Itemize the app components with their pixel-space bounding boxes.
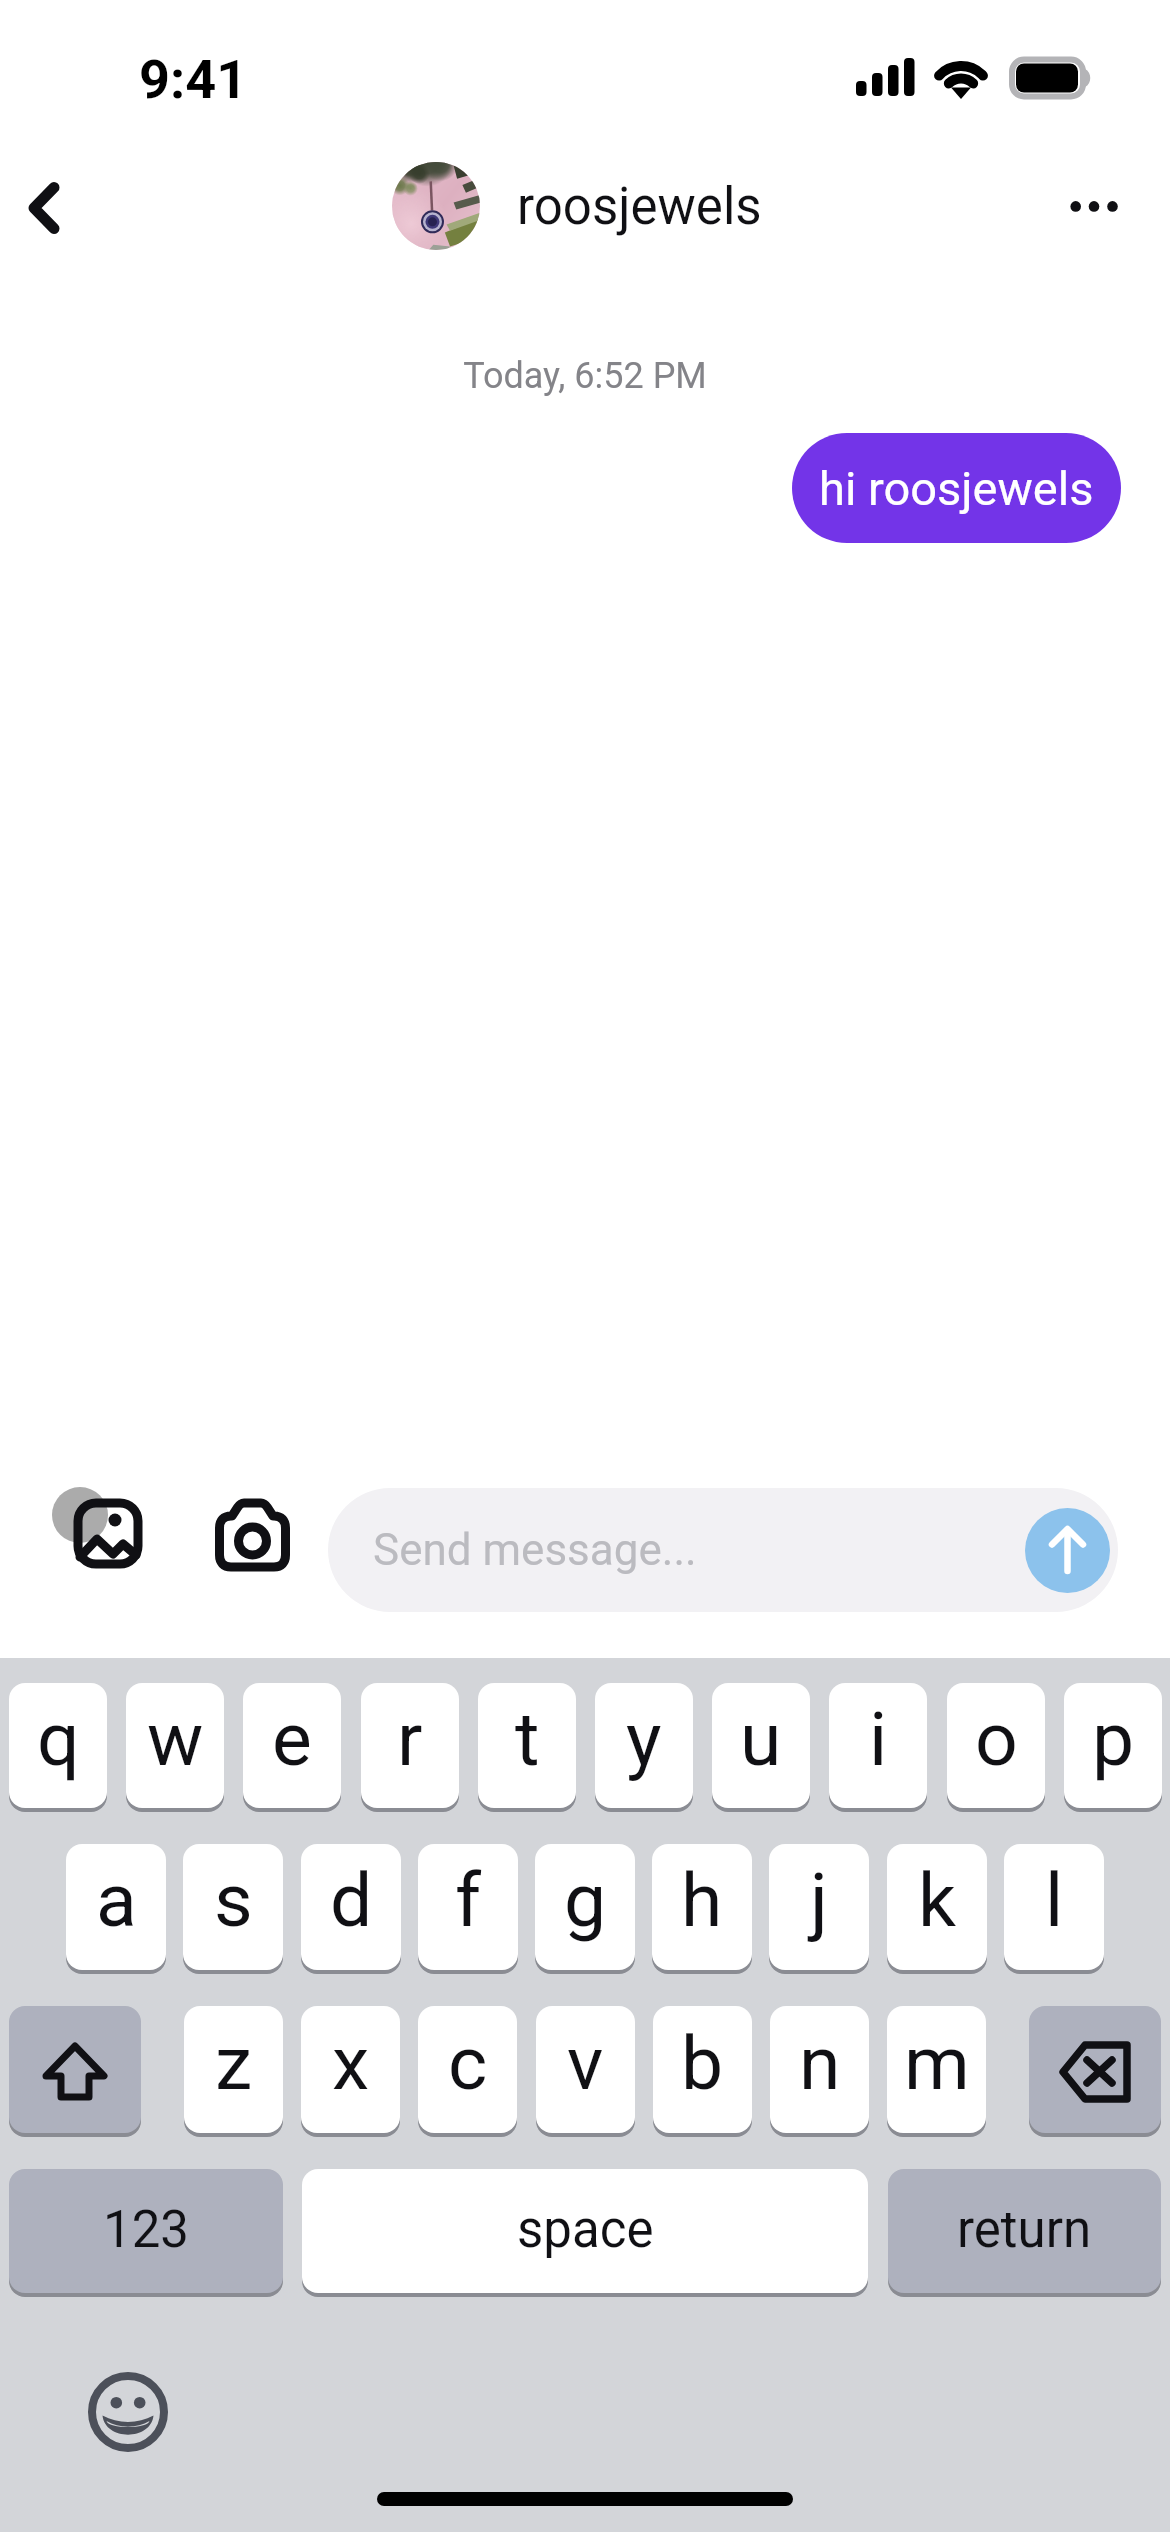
- staticText: d: [330, 1856, 373, 1944]
- staticText: e: [272, 1695, 312, 1783]
- button[interactable]: k: [887, 1844, 987, 1970]
- button[interactable]: m: [887, 2006, 986, 2133]
- button[interactable]: s: [183, 1844, 283, 1970]
- button[interactable]: [392, 162, 480, 250]
- button[interactable]: Emoji keyboard: [88, 2372, 168, 2452]
- staticText: h: [681, 1856, 723, 1944]
- staticText: w: [147, 1695, 204, 1783]
- button[interactable]: Back: [0, 146, 100, 266]
- button[interactable]: Shift: [9, 2006, 141, 2133]
- button[interactable]: More options: [1034, 146, 1160, 267]
- button[interactable]: g: [535, 1844, 635, 1970]
- staticText: o: [975, 1695, 1018, 1783]
- button[interactable]: Camera: [212, 1497, 294, 1577]
- button[interactable]: 123: [9, 2169, 283, 2293]
- button[interactable]: h: [652, 1844, 752, 1970]
- button[interactable]: Photo gallery: [45, 1487, 155, 1587]
- staticText: f: [455, 1856, 482, 1944]
- staticText: a: [96, 1856, 137, 1944]
- staticText: n: [799, 2019, 841, 2107]
- button[interactable]: t: [478, 1683, 576, 1808]
- button[interactable]: space: [302, 2169, 868, 2293]
- button[interactable]: w: [126, 1683, 224, 1808]
- button[interactable]: d: [301, 1844, 401, 1970]
- staticText: return: [957, 2200, 1092, 2260]
- button[interactable]: hi roosjewels: [792, 433, 1121, 543]
- staticText: c: [448, 2019, 488, 2107]
- button[interactable]: c: [418, 2006, 517, 2133]
- staticText: t: [515, 1695, 540, 1783]
- staticText: Send message...: [373, 1524, 697, 1576]
- button[interactable]: Send message...: [328, 1488, 1118, 1612]
- button[interactable]: j: [769, 1844, 869, 1970]
- staticText: q: [37, 1695, 80, 1783]
- staticText: b: [681, 2019, 724, 2107]
- button[interactable]: b: [653, 2006, 752, 2133]
- button[interactable]: n: [770, 2006, 869, 2133]
- button[interactable]: l: [1004, 1844, 1104, 1970]
- button[interactable]: u: [712, 1683, 810, 1808]
- staticText: s: [214, 1856, 253, 1944]
- button[interactable]: y: [595, 1683, 693, 1808]
- staticText: j: [810, 1856, 828, 1944]
- staticText: m: [904, 2019, 970, 2107]
- staticText: l: [1045, 1856, 1064, 1944]
- button[interactable]: z: [184, 2006, 283, 2133]
- staticText: 123: [103, 2200, 189, 2260]
- staticText: k: [918, 1856, 957, 1944]
- staticText: roosjewels: [517, 177, 762, 237]
- staticText: p: [1092, 1695, 1135, 1783]
- button[interactable]: Send: [1025, 1508, 1110, 1593]
- staticText: v: [567, 2019, 604, 2107]
- button[interactable]: r: [361, 1683, 459, 1808]
- staticText: x: [332, 2019, 370, 2107]
- staticText: g: [564, 1856, 607, 1944]
- button[interactable]: v: [536, 2006, 635, 2133]
- staticText: Today, 6:52 PM: [0, 355, 1170, 397]
- staticText: y: [626, 1695, 662, 1783]
- staticText: z: [215, 2019, 253, 2107]
- button[interactable]: return: [888, 2169, 1161, 2293]
- button[interactable]: f: [418, 1844, 518, 1970]
- button[interactable]: i: [829, 1683, 927, 1808]
- staticText: i: [869, 1695, 888, 1783]
- button[interactable]: q: [9, 1683, 107, 1808]
- button[interactable]: x: [301, 2006, 400, 2133]
- button[interactable]: o: [947, 1683, 1045, 1808]
- staticText: 9:41: [139, 48, 248, 111]
- staticText: hi roosjewels: [819, 461, 1094, 516]
- button[interactable]: e: [243, 1683, 341, 1808]
- button[interactable]: Backspace: [1029, 2006, 1161, 2133]
- button[interactable]: p: [1064, 1683, 1162, 1808]
- staticText: r: [397, 1695, 423, 1783]
- staticText: space: [517, 2200, 654, 2260]
- staticText: u: [740, 1695, 782, 1783]
- button[interactable]: a: [66, 1844, 166, 1970]
